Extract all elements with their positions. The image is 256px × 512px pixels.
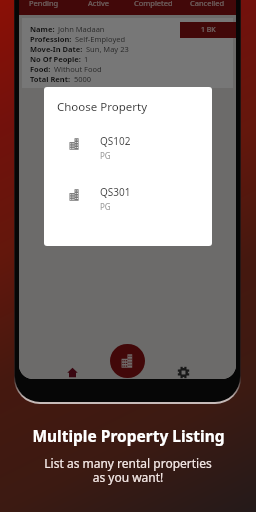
staticText: 1: [84, 54, 89, 64]
button[interactable]: Add property: [110, 344, 145, 378]
staticText: Pending: [29, 0, 59, 8]
staticText: Active: [88, 0, 110, 8]
button[interactable]: 1 BK: [180, 22, 236, 38]
staticText: QS301: [100, 185, 131, 199]
staticText: Without Food: [54, 64, 102, 74]
staticText: Move-In Date:: [30, 44, 83, 54]
staticText: PG: [100, 150, 111, 161]
button[interactable]: Cancelled: [181, 0, 233, 13]
staticText: 1 BK: [201, 25, 216, 35]
staticText: Total Rent:: [30, 74, 71, 84]
button[interactable]: QS301: [44, 185, 212, 215]
staticText: List as many rental properties as you wa…: [44, 455, 212, 486]
staticText: Multiple Property Listing: [32, 425, 225, 446]
staticText: Food:: [30, 64, 51, 74]
staticText: PG: [100, 201, 111, 212]
button[interactable]: Home: [19, 345, 126, 379]
button[interactable]: Settings: [130, 345, 236, 379]
staticText: John Madaan: [58, 24, 105, 34]
staticText: Completed: [134, 0, 173, 8]
button[interactable]: Active: [71, 0, 126, 13]
staticText: 5000: [74, 74, 92, 84]
button[interactable]: QS102: [44, 134, 212, 164]
staticText: QS102: [100, 134, 131, 148]
staticText: Choose Property: [57, 99, 148, 115]
staticText: Self-Employed: [75, 34, 126, 44]
staticText: Profession:: [30, 34, 72, 44]
staticText: No Of People:: [30, 54, 81, 64]
button[interactable]: Completed: [126, 0, 181, 13]
staticText: Name:: [30, 24, 55, 34]
staticText: Sun, May 23: [86, 44, 129, 54]
staticText: Cancelled: [190, 0, 225, 8]
button[interactable]: Pending: [19, 0, 71, 13]
